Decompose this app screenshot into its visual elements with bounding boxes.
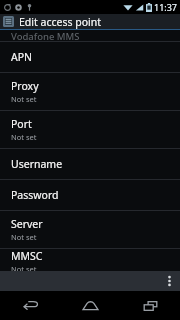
staticText: Username — [11, 157, 63, 171]
staticText: Edit access point — [19, 15, 102, 29]
button[interactable]: Port — [0, 111, 180, 148]
button[interactable]: Home — [60, 291, 120, 320]
staticText: APN — [11, 50, 33, 64]
staticText: Port — [11, 117, 32, 131]
button[interactable]: Back — [0, 291, 60, 320]
button[interactable]: Password — [0, 180, 180, 210]
button[interactable]: APN — [0, 42, 180, 72]
staticText: Not set — [11, 264, 37, 271]
button[interactable]: MMSC — [0, 249, 180, 271]
staticText: Proxy — [11, 79, 39, 93]
staticText: MMSC — [11, 249, 43, 263]
button[interactable]: More options — [158, 271, 180, 291]
button[interactable]: Server — [0, 211, 180, 248]
button[interactable]: Proxy — [0, 73, 180, 110]
button[interactable]: Username — [0, 149, 180, 179]
button[interactable]: Recent apps — [120, 291, 180, 320]
staticText: Not set — [11, 232, 37, 242]
button[interactable]: Edit access point — [0, 14, 180, 29]
staticText: Password — [11, 188, 59, 202]
staticText: 11:37 — [154, 1, 178, 13]
staticText: Not set — [11, 132, 37, 142]
staticText: Vodafone MMS — [11, 30, 80, 41]
button[interactable]: Vodafone MMS — [0, 30, 180, 41]
staticText: Server — [11, 217, 43, 231]
staticText: Not set — [11, 94, 37, 104]
